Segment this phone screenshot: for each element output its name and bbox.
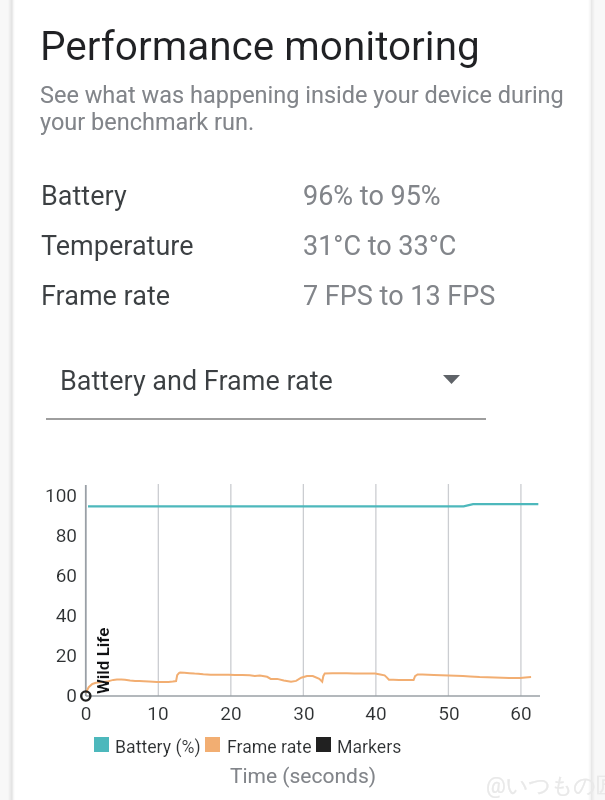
- button[interactable]: Battery and Frame rate: [46, 352, 486, 420]
- staticText: 20: [7, 644, 77, 666]
- button[interactable]: Temperature: [13, 224, 592, 274]
- staticText: Temperature: [41, 230, 194, 262]
- staticText: 7 FPS to 13 FPS: [303, 280, 496, 312]
- staticText: Battery (%): [115, 737, 201, 758]
- other: Change chart series: [443, 375, 460, 384]
- staticText: 100: [7, 484, 77, 506]
- staticText: 40: [346, 702, 406, 724]
- staticText: 40: [7, 604, 77, 626]
- button[interactable]: Frame rate: [13, 274, 592, 324]
- staticText: 0: [7, 684, 77, 706]
- staticText: Performance monitoring: [40, 22, 480, 69]
- staticText: @いつもの匠: [486, 772, 605, 800]
- staticText: Wild Life: [93, 627, 113, 694]
- staticText: 31°C to 33°C: [303, 230, 457, 262]
- staticText: Markers: [337, 737, 402, 758]
- staticText: 30: [274, 702, 334, 724]
- staticText: Battery: [41, 180, 127, 212]
- staticText: Frame rate: [41, 280, 171, 312]
- staticText: 0: [56, 702, 116, 724]
- staticText: 60: [7, 564, 77, 586]
- button[interactable]: Battery: [13, 174, 592, 224]
- staticText: 50: [419, 702, 479, 724]
- staticText: 10: [128, 702, 188, 724]
- staticText: Time (seconds): [153, 764, 453, 789]
- staticText: 60: [491, 702, 551, 724]
- staticText: 20: [201, 702, 261, 724]
- staticText: Frame rate: [227, 737, 312, 758]
- staticText: Battery and Frame rate: [60, 365, 333, 397]
- staticText: 80: [7, 524, 77, 546]
- staticText: 96% to 95%: [303, 180, 441, 212]
- staticText: See what was happening inside your devic…: [40, 81, 572, 135]
